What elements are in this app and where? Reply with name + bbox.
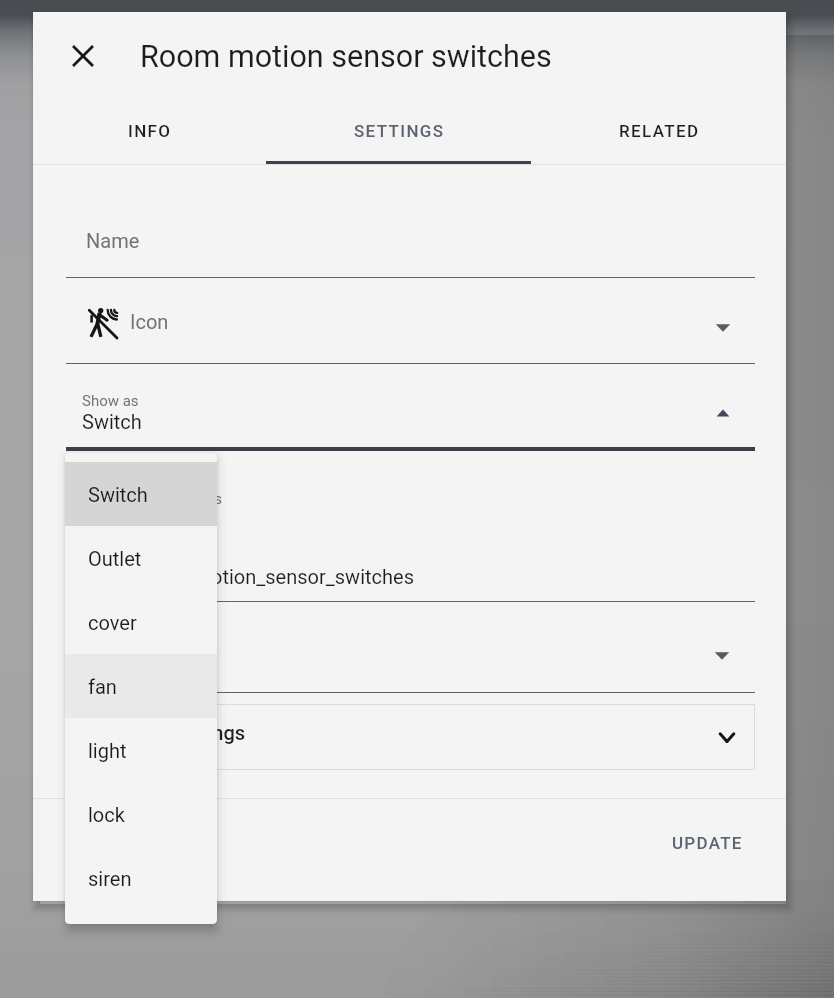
- button[interactable]: [66, 476, 755, 601]
- button[interactable]: INFO: [33, 95, 275, 167]
- button[interactable]: [66, 212, 755, 278]
- staticText: Entity ID and settings: [81, 490, 222, 508]
- button[interactable]: fan: [65, 654, 217, 718]
- button[interactable]: cover: [65, 590, 217, 654]
- button[interactable]: light: [65, 718, 217, 782]
- button[interactable]: SETTINGS: [274, 95, 524, 167]
- staticText: Advanced settings: [79, 721, 246, 744]
- staticText: light: [88, 739, 127, 762]
- staticText: Room motion sensor switches: [140, 39, 552, 75]
- staticText: Name: [86, 229, 140, 252]
- button[interactable]: [66, 614, 755, 692]
- button[interactable]: Outlet: [65, 526, 217, 590]
- staticText: Switch: [82, 410, 142, 433]
- staticText: Show as: [82, 392, 139, 410]
- button[interactable]: [66, 383, 755, 447]
- staticText: SETTINGS: [354, 121, 445, 141]
- button[interactable]: lock: [65, 782, 217, 846]
- staticText: Icon: [130, 310, 169, 333]
- button[interactable]: [66, 297, 755, 363]
- staticText: switch.room_motion_sensor_switches: [74, 565, 414, 588]
- button[interactable]: siren: [65, 846, 217, 910]
- button[interactable]: Advanced settings: [66, 704, 755, 770]
- staticText: Switch: [88, 483, 148, 506]
- button[interactable]: UPDATE: [657, 819, 757, 867]
- staticText: siren: [88, 867, 132, 890]
- button[interactable]: RELATED: [534, 95, 784, 167]
- staticText: INFO: [128, 121, 172, 141]
- button[interactable]: Close: [59, 32, 107, 80]
- staticText: lock: [88, 803, 125, 826]
- button[interactable]: Switch: [65, 462, 217, 526]
- staticText: Outlet: [88, 547, 142, 570]
- staticText: UPDATE: [672, 833, 743, 853]
- staticText: cover: [88, 611, 137, 634]
- staticText: fan: [88, 675, 117, 698]
- staticText: RELATED: [619, 121, 700, 141]
